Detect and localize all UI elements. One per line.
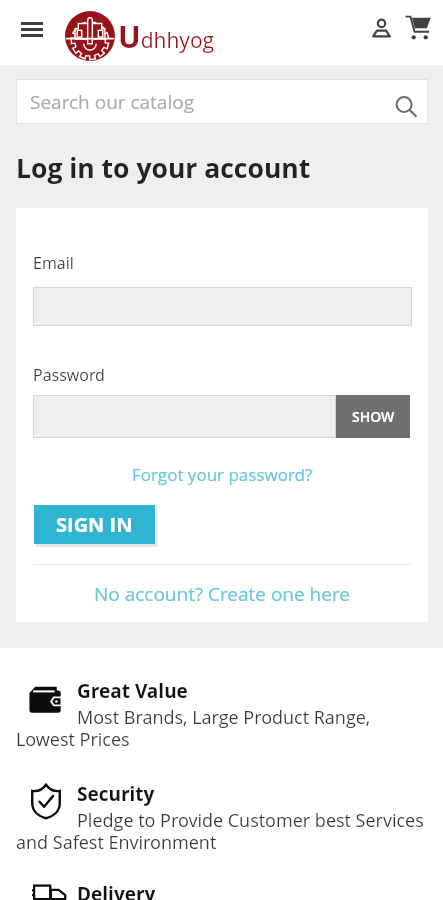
button[interactable]: SHOW — [336, 395, 410, 438]
button[interactable]: Account — [363, 9, 400, 46]
button[interactable]: Udhhyog — [118, 16, 215, 57]
staticText: SIGN IN — [56, 511, 133, 538]
staticText: Log in to your account — [16, 150, 311, 186]
button[interactable]: Cart — [400, 8, 437, 45]
button[interactable]: Great Value — [77, 678, 188, 704]
button[interactable]: Delivery — [77, 881, 156, 900]
staticText: Search our catalog — [30, 89, 195, 115]
button[interactable]: No account? Create one here — [94, 581, 350, 607]
staticText: Email — [33, 252, 74, 274]
button[interactable] — [33, 287, 412, 326]
staticText: Pledge to Provide Customer best Services… — [16, 808, 428, 855]
staticText: Most Brands, Large Product Range, Lowest… — [16, 705, 428, 752]
button[interactable]: Search our catalog — [16, 79, 428, 124]
button[interactable]: Menu — [11, 8, 53, 50]
staticText: SHOW — [352, 407, 395, 426]
button[interactable]: Security — [77, 781, 155, 807]
button[interactable] — [33, 395, 336, 438]
button[interactable]: Forgot your password? — [132, 463, 313, 486]
staticText: Password — [33, 364, 105, 386]
button[interactable]: SIGN IN — [34, 505, 155, 544]
